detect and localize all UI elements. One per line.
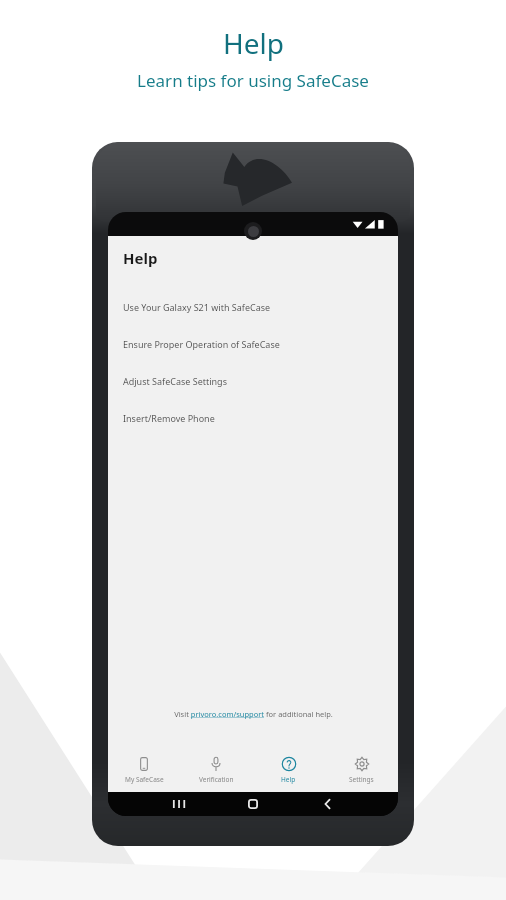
button[interactable]: Ensure Proper Operation of SafeCase	[108, 325, 398, 362]
staticText: My SafeCase	[125, 775, 164, 784]
staticText: Help	[281, 775, 296, 784]
staticText: Help	[223, 24, 284, 62]
staticText: Settings	[349, 775, 374, 784]
staticText: Learn tips for using SafeCase	[137, 69, 369, 92]
button[interactable]: Settings	[325, 752, 398, 788]
button[interactable]: Insert/Remove Phone	[108, 399, 398, 436]
button[interactable]: Adjust SafeCase Settings	[108, 362, 398, 399]
staticText: Help	[123, 248, 158, 268]
button[interactable]: My SafeCase	[108, 752, 180, 788]
staticText: Visit privoro.com/support for additional…	[174, 709, 333, 719]
staticText: Adjust SafeCase Settings	[123, 375, 227, 387]
staticText: Insert/Remove Phone	[123, 412, 215, 424]
staticText: Use Your Galaxy S21 with SafeCase	[123, 301, 271, 313]
staticText: Ensure Proper Operation of SafeCase	[123, 338, 280, 350]
staticText: Verification	[199, 775, 234, 784]
button[interactable]: Use Your Galaxy S21 with SafeCase	[108, 288, 398, 325]
button[interactable]: Help	[252, 752, 325, 788]
button[interactable]: Verification	[180, 752, 252, 788]
